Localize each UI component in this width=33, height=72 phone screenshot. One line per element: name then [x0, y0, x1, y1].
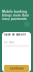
- staticText: Full name: [4, 41, 14, 44]
- staticText: Mobile banking brings more than easy pay…: [2, 10, 29, 21]
- button[interactable]: Continue: [4, 65, 29, 72]
- staticText: Continue: [10, 67, 23, 70]
- staticText: Open an account: [4, 33, 26, 36]
